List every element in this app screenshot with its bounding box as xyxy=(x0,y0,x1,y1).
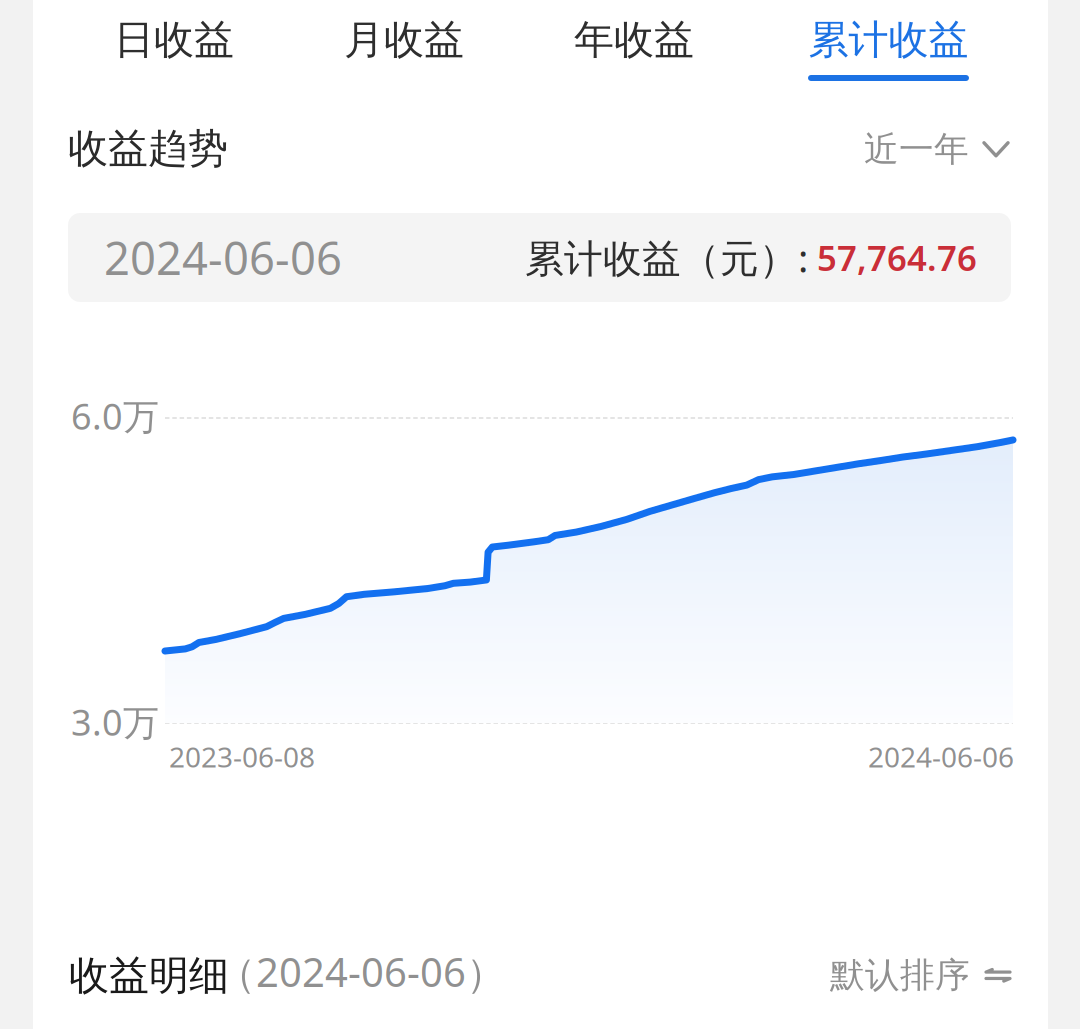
staticText: 月收益 xyxy=(344,15,464,64)
staticText: 年收益 xyxy=(574,15,694,64)
button[interactable]: 默认排序 xyxy=(810,934,1027,1017)
staticText: 累计收益（元）: xyxy=(525,232,808,283)
button[interactable]: 近一年 xyxy=(844,108,1027,191)
staticText: 2023-06-08 xyxy=(169,738,315,775)
staticText: 日收益 xyxy=(114,15,234,64)
button[interactable]: 累计收益 xyxy=(802,0,975,81)
button[interactable]: 日收益 xyxy=(112,0,236,81)
staticText: 收益趋势 xyxy=(68,124,228,173)
staticText: 3.0万 xyxy=(71,698,159,746)
staticText: 2024-06-06 xyxy=(104,227,342,288)
staticText: 收益明细 xyxy=(69,951,229,1000)
staticText: 2024-06-06 xyxy=(868,738,1014,775)
staticText: （2024-06-06） xyxy=(216,945,506,998)
button[interactable]: 年收益 xyxy=(569,0,699,81)
staticText: 默认排序 xyxy=(830,954,970,997)
button[interactable]: 月收益 xyxy=(339,0,469,81)
staticText: 6.0万 xyxy=(71,392,159,440)
staticText: 57,764.76 xyxy=(808,234,977,280)
staticText: 近一年 xyxy=(864,128,969,171)
staticText: 累计收益 xyxy=(808,15,968,64)
